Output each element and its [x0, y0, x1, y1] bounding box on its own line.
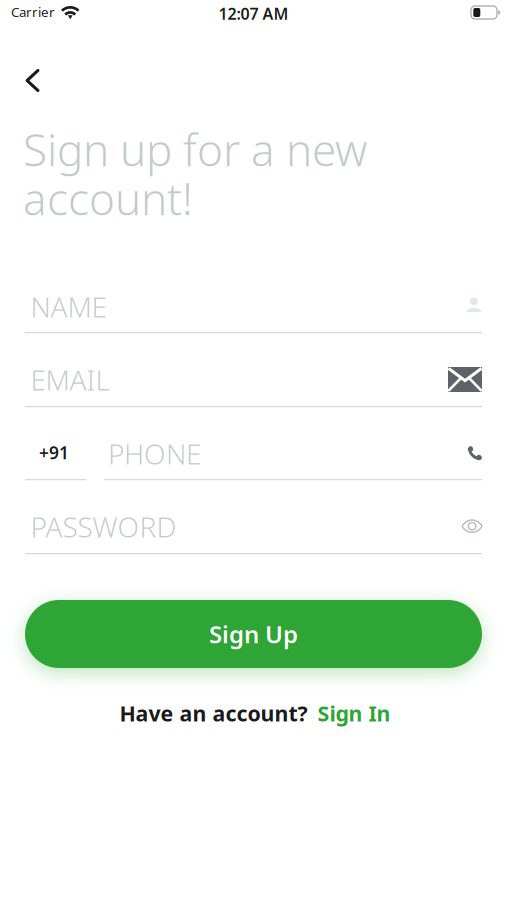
button[interactable]: Sign Up: [25, 600, 482, 668]
staticText: EMAIL: [30, 361, 109, 398]
staticText: +91: [39, 441, 69, 464]
staticText: 12:07 AM: [218, 3, 288, 24]
staticText: PASSWORD: [30, 508, 176, 545]
staticText: Sign up for a new: [23, 120, 367, 178]
staticText: PHONE: [108, 435, 201, 472]
button[interactable]: Back: [9, 57, 55, 103]
button[interactable]: Sign In: [317, 699, 390, 727]
staticText: Carrier: [11, 3, 55, 21]
staticText: Sign Up: [209, 618, 298, 650]
staticText: Have an account?: [119, 699, 307, 727]
staticText: account!: [23, 169, 193, 227]
staticText: NAME: [30, 288, 106, 325]
staticText: Sign In: [317, 699, 390, 727]
